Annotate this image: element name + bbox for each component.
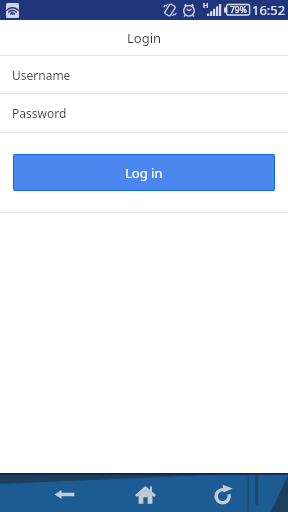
button[interactable]: Home [125, 475, 165, 512]
button[interactable]: Username [0, 56, 288, 94]
staticText: Login [127, 29, 162, 47]
staticText: H [203, 1, 209, 11]
button[interactable]: Refresh [203, 475, 243, 512]
button[interactable]: Back [44, 475, 84, 512]
button[interactable]: Password [0, 94, 288, 133]
staticText: Log in [125, 164, 163, 182]
button[interactable]: Log in [14, 155, 274, 190]
staticText: 79% [230, 4, 247, 16]
staticText: 16:52 [252, 1, 286, 19]
staticText: Password [12, 105, 67, 121]
staticText: Username [12, 67, 71, 83]
